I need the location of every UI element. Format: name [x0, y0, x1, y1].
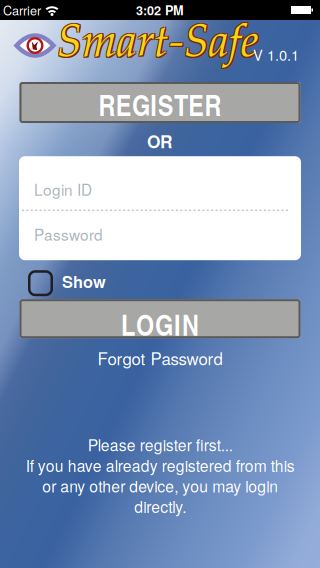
button[interactable]: Show password [28, 270, 53, 296]
staticText: Smart-Safe [58, 24, 259, 69]
staticText: V 1.0.1 [253, 44, 299, 65]
staticText: LOGIN [121, 304, 199, 344]
staticText: 3:02 PM [136, 1, 184, 19]
button[interactable]: Password [19, 209, 301, 260]
button[interactable]: LOGIN [19, 299, 300, 338]
staticText: Carrier [3, 1, 41, 19]
staticText: REGISTER [98, 85, 222, 124]
staticText: Smart-Safe [56, 24, 257, 69]
staticText: Smart-Safe [57, 23, 258, 68]
staticText: OR [147, 129, 173, 153]
staticText: Show [62, 270, 106, 293]
staticText: Please register first... If you have alr… [25, 434, 294, 517]
staticText: Smart-Safe [58, 22, 259, 67]
button[interactable]: Forgot Password [97, 346, 222, 370]
button[interactable]: Login ID [19, 157, 301, 208]
button[interactable]: REGISTER [19, 82, 300, 123]
staticText: Smart-Safe [56, 22, 257, 67]
staticText: Forgot Password [97, 346, 222, 370]
staticText: Login ID [34, 178, 92, 200]
staticText: Password [34, 223, 103, 245]
